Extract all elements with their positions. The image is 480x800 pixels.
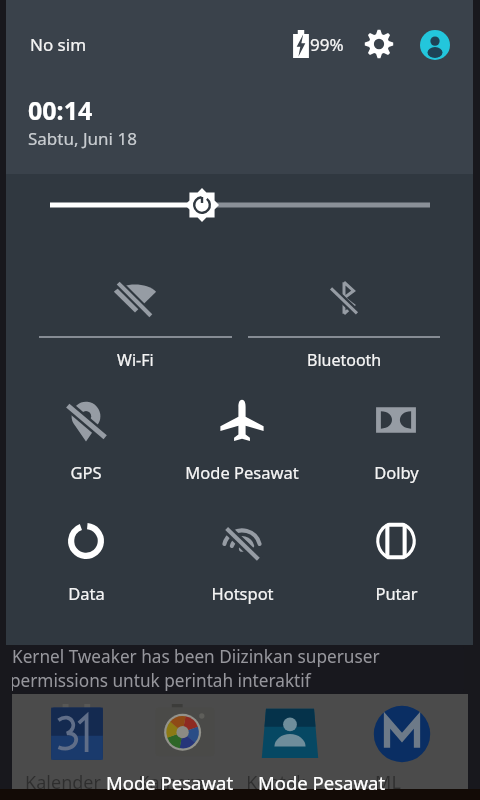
button[interactable]: Brightness bbox=[6, 185, 473, 225]
staticText: GPS bbox=[70, 461, 102, 483]
button[interactable]: GPS bbox=[10, 396, 162, 496]
staticText: Dolby bbox=[374, 461, 419, 483]
staticText: Bluetooth bbox=[307, 349, 382, 371]
button[interactable]: Bluetooth bbox=[240, 274, 448, 386]
staticText: 99% bbox=[310, 33, 344, 56]
button[interactable]: Data bbox=[10, 517, 162, 617]
staticText: Hotspot bbox=[211, 582, 274, 604]
button[interactable]: Kontak bbox=[244, 700, 336, 795]
button[interactable]: Kalender bbox=[31, 700, 123, 795]
staticText: Data bbox=[68, 582, 105, 604]
staticText: Mode Pesawat bbox=[106, 770, 234, 795]
button[interactable]: Putar bbox=[320, 517, 472, 617]
staticText: Mode Pesawat bbox=[185, 461, 299, 483]
staticText: permissions untuk perintah interaktif bbox=[12, 669, 311, 692]
button[interactable]: Mode Pesawat bbox=[166, 396, 318, 496]
staticText: Kernel Tweaker has been Diizinkan superu… bbox=[12, 645, 380, 668]
staticText: Mode Pesawat bbox=[258, 770, 386, 795]
staticText: Sabtu, Juni 18 bbox=[28, 127, 137, 150]
staticText: Wi-Fi bbox=[117, 349, 154, 371]
staticText: No sim bbox=[30, 33, 87, 56]
button[interactable]: ML Launcher bbox=[356, 700, 448, 795]
staticText: Kalender bbox=[17, 770, 109, 795]
button[interactable]: Hotspot bbox=[166, 517, 318, 617]
button[interactable]: Dolby bbox=[320, 396, 472, 496]
staticText: Kamera bbox=[125, 770, 217, 795]
button[interactable]: Wi-Fi bbox=[31, 274, 239, 386]
staticText: ML Launcher bbox=[342, 770, 434, 795]
staticText: Kontak bbox=[230, 770, 322, 795]
button[interactable]: Settings bbox=[362, 27, 396, 61]
staticText: 00:14 bbox=[28, 93, 93, 127]
button[interactable]: User profile bbox=[420, 30, 450, 60]
staticText: Putar bbox=[375, 582, 418, 604]
button[interactable]: Kamera bbox=[139, 700, 231, 795]
